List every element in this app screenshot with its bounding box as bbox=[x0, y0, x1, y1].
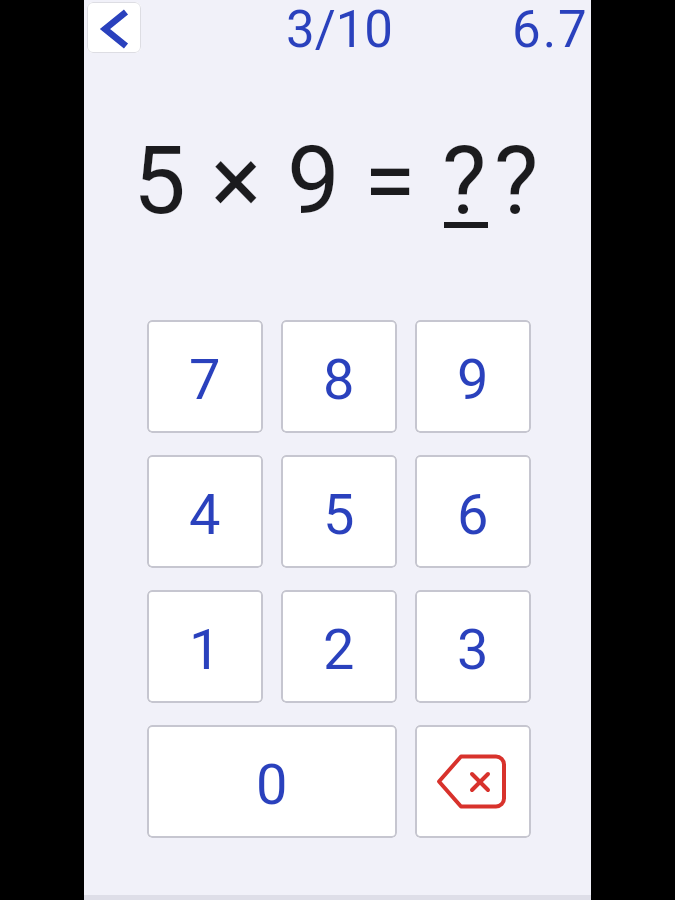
staticText: = bbox=[364, 126, 416, 236]
staticText: 1 bbox=[189, 617, 221, 683]
staticText: 3 bbox=[457, 617, 489, 683]
staticText: 7 bbox=[189, 347, 221, 413]
staticText: ? bbox=[442, 126, 487, 236]
staticText: 5 bbox=[323, 482, 355, 548]
staticText: × bbox=[211, 126, 262, 236]
button[interactable]: 5 bbox=[281, 455, 397, 568]
button[interactable]: 0 bbox=[147, 725, 397, 838]
button[interactable]: 1 bbox=[147, 590, 263, 703]
staticText: 9 bbox=[457, 347, 489, 413]
staticText: 2 bbox=[323, 617, 355, 683]
staticText: 0 bbox=[256, 752, 288, 818]
staticText: 8 bbox=[323, 347, 355, 413]
staticText: 6 bbox=[457, 482, 489, 548]
button[interactable]: 4 bbox=[147, 455, 263, 568]
staticText: 6.7 bbox=[512, 0, 589, 60]
button[interactable]: 9 bbox=[415, 320, 531, 433]
staticText: ? bbox=[494, 126, 539, 236]
staticText: 4 bbox=[189, 482, 221, 548]
button[interactable]: 7 bbox=[147, 320, 263, 433]
button[interactable]: 2 bbox=[281, 590, 397, 703]
staticText: 9 bbox=[287, 126, 340, 236]
button[interactable]: 3 bbox=[415, 590, 531, 703]
button[interactable]: 8 bbox=[281, 320, 397, 433]
button[interactable] bbox=[87, 2, 141, 53]
staticText: 3/10 bbox=[286, 0, 394, 60]
button[interactable]: 6 bbox=[415, 455, 531, 568]
staticText: 5 bbox=[133, 126, 186, 236]
button[interactable] bbox=[415, 725, 531, 838]
